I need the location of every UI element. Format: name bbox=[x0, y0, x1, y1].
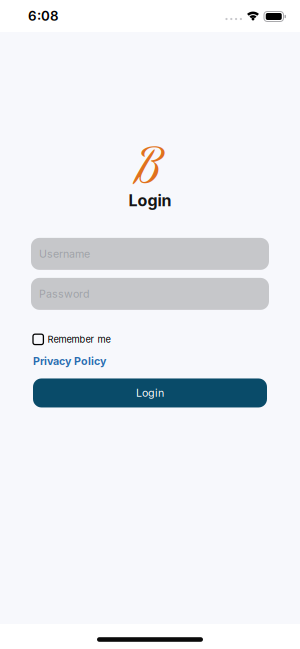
staticText: 6:08 bbox=[28, 8, 59, 24]
staticText: Password bbox=[39, 288, 90, 300]
staticText: Remember me bbox=[47, 334, 110, 345]
staticText: Privacy Policy bbox=[33, 355, 106, 367]
staticText: Login bbox=[128, 191, 171, 210]
staticText: Login bbox=[136, 387, 164, 399]
staticText: Username bbox=[39, 248, 90, 260]
button[interactable]: Username bbox=[31, 238, 269, 270]
button[interactable]: Login bbox=[33, 378, 267, 407]
staticText: B bbox=[136, 136, 158, 210]
button[interactable]: Remember me bbox=[33, 334, 110, 345]
button[interactable]: Privacy Policy bbox=[33, 355, 106, 367]
button[interactable]: Password bbox=[31, 278, 269, 310]
